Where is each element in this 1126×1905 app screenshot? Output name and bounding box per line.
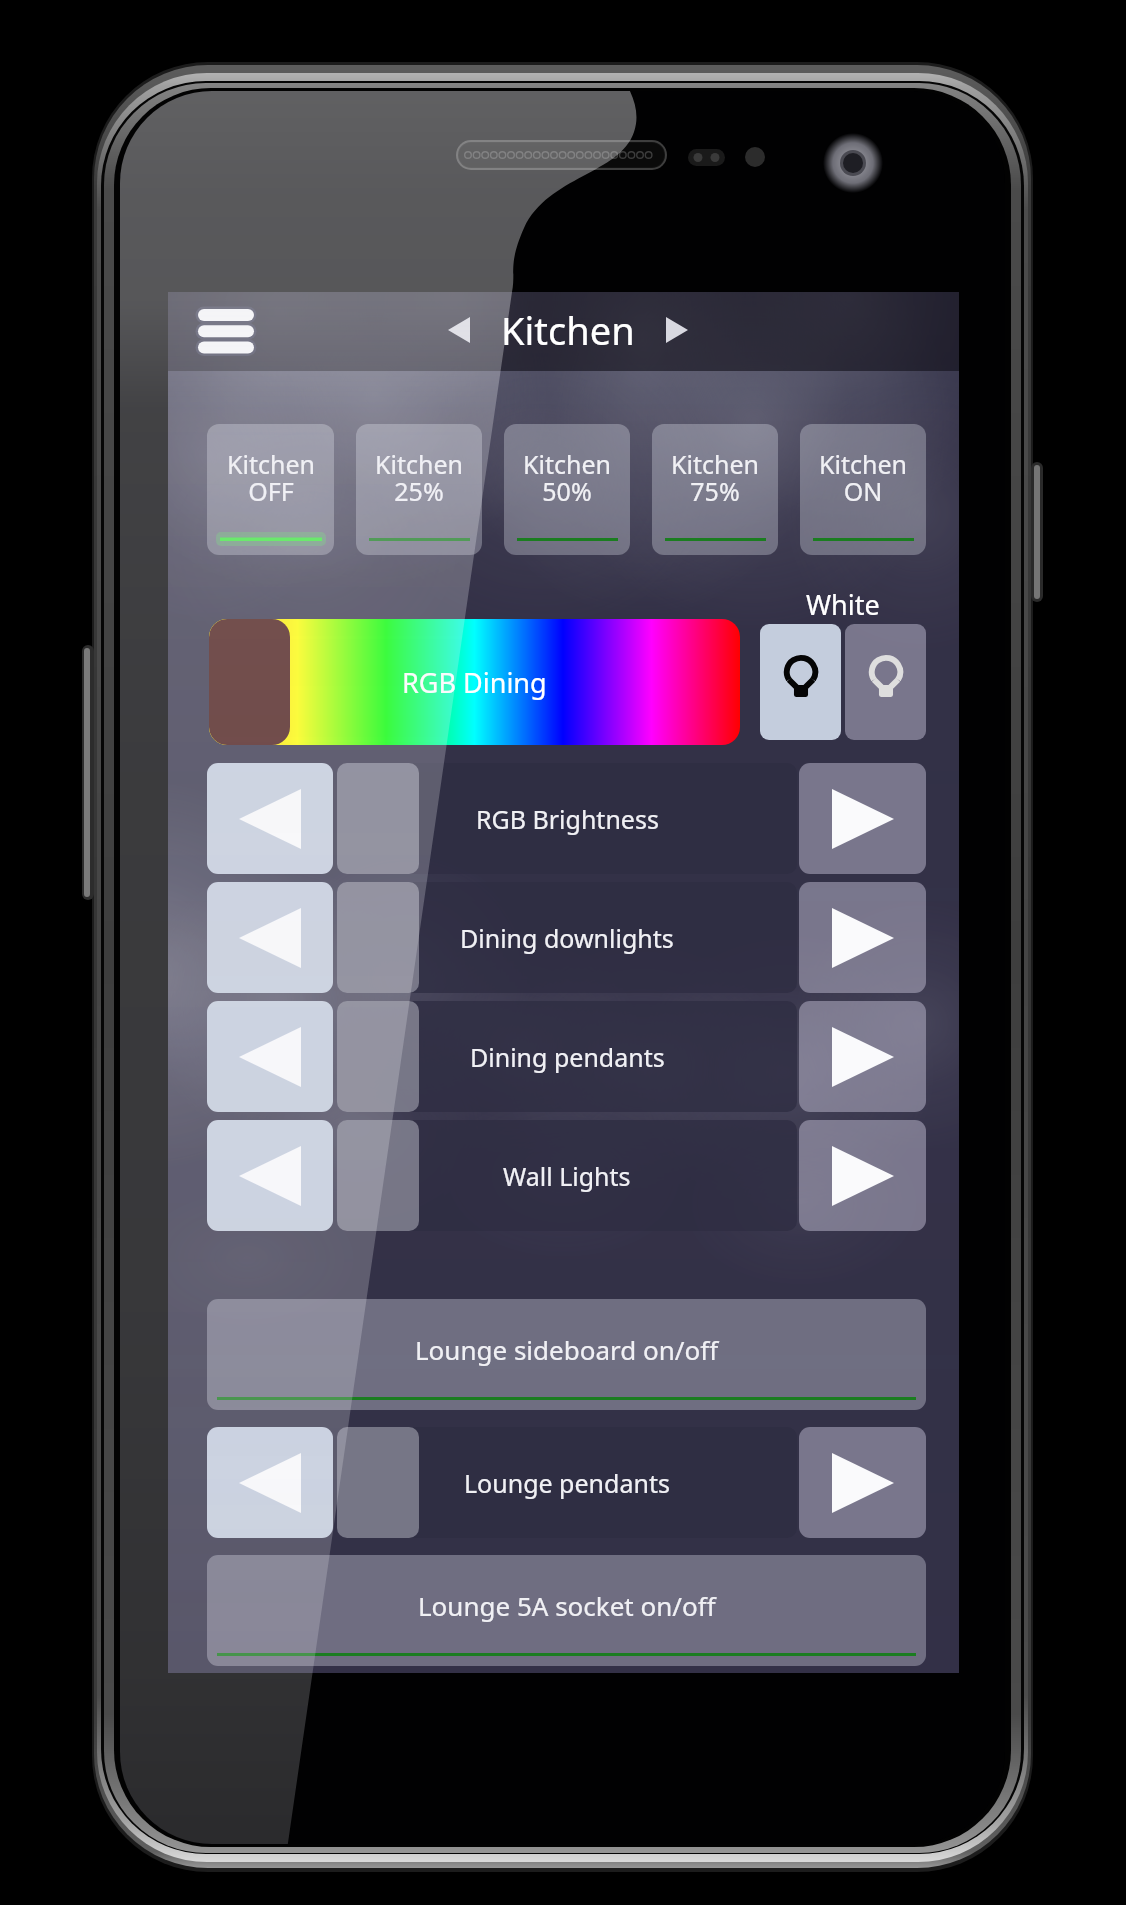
button[interactable]: Lounge sideboard on/off <box>207 1299 926 1410</box>
button[interactable]: Increase Lounge pendants <box>799 1427 926 1538</box>
staticText: Kitchen OFF <box>227 447 315 509</box>
button[interactable]: Decrease Wall Lights <box>207 1120 333 1231</box>
button[interactable]: Decrease Dining pendants <box>207 1001 333 1112</box>
button[interactable]: Decrease RGB Brightness <box>207 763 333 874</box>
staticText: Lounge 5A socket on/off <box>418 1588 716 1623</box>
button[interactable]: Kitchen 75% <box>652 424 778 555</box>
staticText: Lounge pendants <box>464 1466 670 1500</box>
staticText: Dining pendants <box>470 1040 665 1074</box>
button[interactable]: Previous room <box>433 304 485 356</box>
button[interactable]: Increase Dining downlights <box>799 882 926 993</box>
staticText: Kitchen 75% <box>671 447 759 509</box>
button[interactable]: Next room <box>651 304 703 356</box>
button[interactable]: Kitchen ON <box>800 424 926 555</box>
button[interactable]: Increase Dining pendants <box>799 1001 926 1112</box>
button[interactable]: Kitchen 25% <box>356 424 482 555</box>
button[interactable]: Kitchen 50% <box>504 424 630 555</box>
button[interactable]: White lights off <box>845 624 926 740</box>
button[interactable]: Lounge 5A socket on/off <box>207 1555 926 1666</box>
button[interactable]: Kitchen OFF <box>207 424 334 555</box>
staticText: Kitchen 50% <box>523 447 611 509</box>
button[interactable]: Lounge pendants <box>337 1427 797 1538</box>
staticText: Wall Lights <box>503 1159 631 1193</box>
staticText: Dining downlights <box>460 921 674 955</box>
staticText: RGB Brightness <box>476 802 659 836</box>
button[interactable]: RGB Dining <box>209 619 740 745</box>
button[interactable]: Dining pendants <box>337 1001 797 1112</box>
button[interactable]: Wall Lights <box>337 1120 797 1231</box>
staticText: Lounge sideboard on/off <box>415 1332 719 1367</box>
button[interactable]: Dining downlights <box>337 882 797 993</box>
button[interactable]: Increase RGB Brightness <box>799 763 926 874</box>
button[interactable]: Decrease Dining downlights <box>207 882 333 993</box>
button[interactable]: Menu <box>186 300 266 362</box>
button[interactable]: RGB Brightness <box>337 763 797 874</box>
button[interactable]: White lights on <box>760 624 841 740</box>
staticText: White <box>806 586 880 623</box>
staticText: RGB Dining <box>402 664 547 701</box>
staticText: Kitchen 25% <box>375 447 463 509</box>
button[interactable]: Increase Wall Lights <box>799 1120 926 1231</box>
button[interactable]: Decrease Lounge pendants <box>207 1427 333 1538</box>
staticText: Kitchen ON <box>819 447 907 509</box>
staticText: Kitchen <box>501 304 635 356</box>
